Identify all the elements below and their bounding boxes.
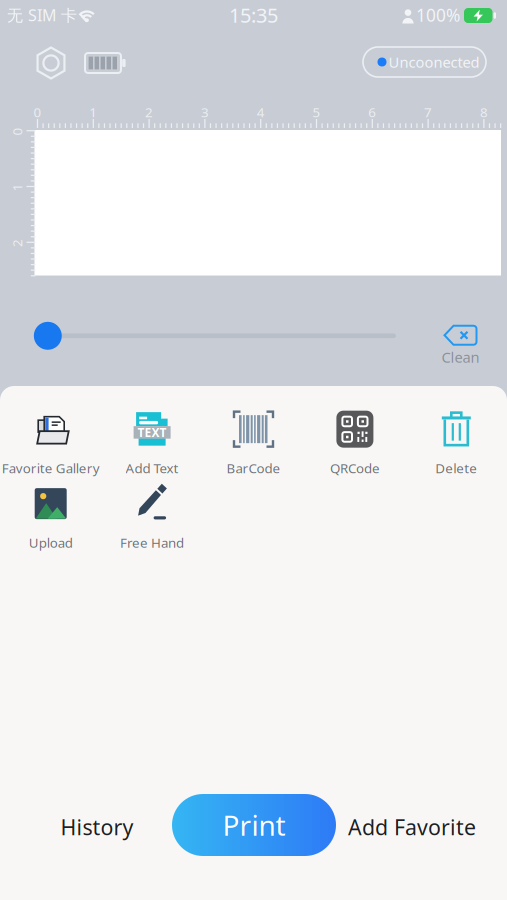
staticText: Add Favorite (348, 813, 476, 841)
staticText: 2 (145, 103, 153, 121)
staticText: 7 (424, 103, 432, 121)
staticText: 4 (257, 103, 265, 121)
staticText: 0 (13, 123, 21, 140)
button[interactable]: BarCode (226, 407, 280, 477)
button[interactable]: Uncoonected (362, 46, 487, 78)
button[interactable]: Favorite Gallery (2, 407, 100, 477)
staticText: Clean (441, 347, 479, 367)
staticText: History (60, 813, 133, 841)
button[interactable]: Free Hand (120, 482, 184, 551)
staticText: 100% (416, 3, 460, 26)
staticText: 8 (480, 103, 488, 121)
button[interactable]: Add Favorite (347, 805, 477, 849)
button[interactable]: TEXT (126, 407, 179, 477)
staticText: 6 (368, 103, 376, 121)
staticText: 5 (312, 103, 320, 121)
button[interactable]: Upload (29, 482, 73, 551)
button[interactable]: Print (172, 794, 336, 856)
staticText: Delete (435, 459, 477, 477)
staticText: QRCode (330, 459, 380, 477)
staticText: 3 (201, 103, 209, 121)
staticText: 0 (33, 103, 41, 121)
staticText: Add Text (126, 459, 179, 477)
button[interactable]: Delete (434, 407, 478, 477)
staticText: 15:35 (229, 2, 278, 28)
button[interactable]: History (42, 805, 152, 849)
staticText: TEXT (138, 424, 167, 440)
button[interactable]: QRCode (330, 407, 380, 477)
button[interactable]: Clean (441, 324, 479, 367)
staticText: Free Hand (120, 534, 184, 551)
button[interactable]: Settings (33, 45, 69, 81)
staticText: Upload (29, 534, 73, 551)
staticText: Print (222, 806, 285, 844)
staticText: 无 SIM 卡 (7, 4, 77, 26)
staticText: 1 (89, 103, 97, 121)
staticText: Favorite Gallery (2, 459, 100, 477)
staticText: 1 (13, 178, 21, 196)
staticText: Uncoonected (388, 52, 479, 72)
staticText: 2 (13, 234, 21, 252)
staticText: BarCode (226, 459, 280, 477)
